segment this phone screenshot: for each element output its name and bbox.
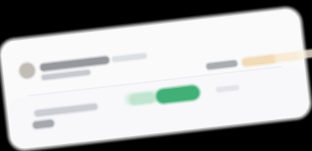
button[interactable]: Transaction summary card xyxy=(0,0,312,151)
